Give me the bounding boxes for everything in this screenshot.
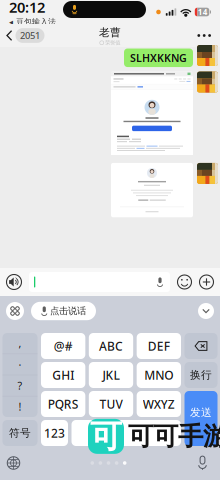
staticText: 可可手游 xyxy=(128,421,220,452)
button[interactable]: , xyxy=(2,333,37,354)
staticText: TUV xyxy=(99,396,122,412)
button[interactable]: Dictation xyxy=(197,456,220,470)
button[interactable]: DEF xyxy=(137,333,181,359)
staticText: 符号 xyxy=(9,426,31,439)
staticText: ? xyxy=(17,378,22,393)
staticText: WXYZ xyxy=(143,396,175,412)
staticText: , xyxy=(18,336,21,350)
button[interactable]: 符号 xyxy=(2,420,37,446)
staticText: 可 xyxy=(90,417,122,456)
button[interactable]: MNO xyxy=(137,362,181,388)
staticText: 123 xyxy=(44,425,65,441)
button[interactable]: 发送 xyxy=(184,391,217,446)
staticText: GHI xyxy=(52,367,74,383)
staticText: 20:12 xyxy=(9,0,45,17)
button[interactable]: TUV xyxy=(89,391,133,417)
button[interactable]: More actions xyxy=(199,274,220,289)
button[interactable]: ! xyxy=(2,396,37,417)
staticText: ◂ 豆包输入法 xyxy=(9,17,56,27)
button[interactable]: PQRS xyxy=(41,391,85,417)
button[interactable]: 点击说话 xyxy=(31,302,96,320)
button[interactable]: Voice input xyxy=(0,274,22,290)
button[interactable]: Back xyxy=(0,23,44,48)
button[interactable]: Delete xyxy=(184,333,217,359)
staticText: 换行 xyxy=(190,368,212,381)
staticText: 14 xyxy=(198,7,208,17)
button[interactable]: 123 xyxy=(41,420,68,446)
staticText: 荣誉值 xyxy=(105,39,120,46)
button[interactable]: @# xyxy=(41,333,85,359)
button[interactable]: Collapse keyboard xyxy=(198,303,220,319)
staticText: @# xyxy=(54,338,73,354)
button[interactable]: ABC xyxy=(89,333,133,359)
staticText: MNO xyxy=(144,367,173,383)
staticText: 老曹 xyxy=(99,26,121,39)
button[interactable]: ? xyxy=(2,375,37,396)
button[interactable]: Space xyxy=(71,420,181,446)
staticText: SLHXKKNG xyxy=(130,51,187,65)
button[interactable]: GHI xyxy=(41,362,85,388)
button[interactable]: WXYZ xyxy=(137,391,181,417)
button[interactable]: More xyxy=(188,26,220,45)
button[interactable]: Emoji xyxy=(177,274,192,289)
button[interactable]: Switch language xyxy=(0,456,20,469)
staticText: JKL xyxy=(102,367,119,383)
staticText: ! xyxy=(18,400,21,414)
staticText: DEF xyxy=(148,338,170,354)
button[interactable]: JKL xyxy=(89,362,133,388)
staticText: 发送 xyxy=(190,406,212,419)
staticText: 2051 xyxy=(20,29,40,42)
staticText: PQRS xyxy=(48,396,79,412)
staticText: 点击说话 xyxy=(50,305,86,317)
button[interactable]: 换行 xyxy=(184,362,217,388)
staticText: ABC xyxy=(99,338,123,354)
button[interactable]: · xyxy=(2,354,37,375)
staticText: · xyxy=(18,357,21,372)
button[interactable]: Switch keyboard xyxy=(0,302,24,320)
